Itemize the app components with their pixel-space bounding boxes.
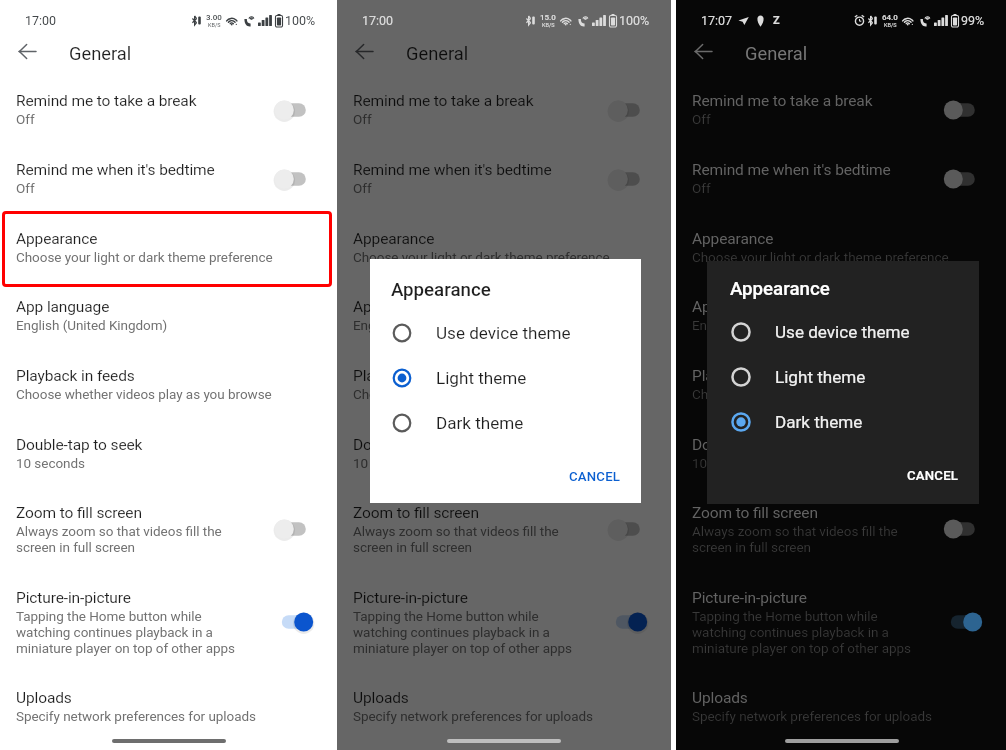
button[interactable]: Picture-in-picture — [337, 572, 671, 672]
button[interactable]: Back — [687, 35, 720, 68]
staticText: 15.0 — [540, 13, 556, 22]
button[interactable]: CANCEL — [897, 462, 969, 489]
staticText: watching continues playback in a — [353, 624, 550, 640]
button[interactable]: Appearance — [676, 213, 1006, 282]
staticText: Off — [16, 111, 35, 127]
button[interactable]: Playback in feeds — [676, 350, 1006, 419]
button[interactable]: Picture-in-picture — [676, 572, 1006, 672]
staticText: General — [745, 43, 808, 64]
button[interactable]: Zoom to fill screen — [0, 487, 337, 571]
staticText: Picture-in-picture — [692, 589, 807, 607]
button[interactable]: Turn off — [608, 609, 648, 635]
button[interactable]: Use device theme — [370, 310, 641, 355]
staticText: Playback in feeds — [692, 367, 811, 385]
staticText: Off — [353, 180, 372, 196]
button[interactable]: Playback in feeds — [0, 350, 337, 419]
staticText: Picture-in-picture — [16, 589, 131, 607]
staticText: CANCEL — [907, 468, 959, 483]
button[interactable]: Zoom to fill screen — [337, 487, 671, 571]
staticText: Uploads — [353, 689, 409, 707]
staticText: Double-tap to seek — [353, 436, 480, 454]
button[interactable]: App language — [676, 281, 1006, 350]
staticText: Appearance — [16, 230, 98, 248]
staticText: Always zoom so that videos fill the — [353, 523, 559, 539]
staticText: General — [69, 43, 132, 64]
staticText: 100% — [619, 13, 650, 28]
staticText: Remind me when it's bedtime — [692, 161, 891, 179]
staticText: Tapping the Home button while — [16, 608, 202, 624]
button[interactable]: Light theme — [370, 355, 641, 400]
button[interactable]: Dark theme — [707, 399, 979, 444]
staticText: miniature player on top of other apps — [353, 640, 572, 656]
staticText: Double-tap to seek — [16, 436, 143, 454]
staticText: Tapping the Home button while — [692, 608, 878, 624]
staticText: screen in full screen — [692, 539, 811, 555]
staticText: KB/S — [884, 22, 897, 28]
staticText: 10 seconds — [16, 455, 85, 471]
button[interactable]: Turn on — [608, 97, 648, 123]
staticText: Zoom to fill screen — [16, 504, 142, 522]
button[interactable]: Turn on — [943, 97, 983, 123]
staticText: 10 seconds — [692, 455, 761, 471]
button[interactable]: Uploads — [676, 672, 1006, 741]
button[interactable]: Turn on — [943, 166, 983, 192]
staticText: 17:07 — [701, 13, 733, 28]
staticText: screen in full screen — [16, 539, 135, 555]
button[interactable]: CANCEL — [559, 463, 631, 490]
staticText: English (United Kingdom) — [692, 317, 844, 333]
staticText: 17:00 — [25, 13, 57, 28]
staticText: Appearance — [391, 279, 491, 301]
staticText: Appearance — [730, 278, 830, 300]
staticText: Double-tap to seek — [692, 436, 819, 454]
staticText: App language — [692, 298, 786, 316]
staticText: Specify network preferences for uploads — [353, 708, 593, 724]
button[interactable]: Uploads — [0, 672, 337, 741]
staticText: Remind me when it's bedtime — [353, 161, 552, 179]
button[interactable]: Picture-in-picture — [0, 572, 337, 672]
button[interactable]: Double-tap to seek — [337, 419, 671, 488]
staticText: miniature player on top of other apps — [16, 640, 235, 656]
button[interactable]: Remind me to take a break — [0, 75, 337, 144]
button[interactable]: Turn on — [274, 516, 314, 542]
button[interactable]: Playback in feeds — [337, 350, 671, 419]
button[interactable]: Use device theme — [707, 309, 979, 354]
button[interactable]: Double-tap to seek — [676, 419, 1006, 488]
button[interactable]: Back — [11, 35, 44, 68]
staticText: Zoom to fill screen — [692, 504, 818, 522]
button[interactable]: Appearance — [0, 213, 337, 282]
button[interactable]: Turn on — [608, 516, 648, 542]
button[interactable]: Back — [348, 35, 381, 68]
staticText: Off — [16, 180, 35, 196]
button[interactable]: Turn on — [274, 97, 314, 123]
button[interactable]: Uploads — [337, 672, 671, 741]
button[interactable]: Appearance — [337, 213, 671, 282]
staticText: 99% — [961, 13, 985, 28]
button[interactable]: App language — [0, 281, 337, 350]
button[interactable]: Remind me to take a break — [337, 75, 671, 144]
staticText: Remind me when it's bedtime — [16, 161, 215, 179]
staticText: Remind me to take a break — [353, 92, 534, 110]
staticText: 10 seconds — [353, 455, 422, 471]
staticText: Z — [773, 14, 780, 27]
button[interactable]: Turn on — [274, 166, 314, 192]
staticText: Specify network preferences for uploads — [16, 708, 256, 724]
staticText: App language — [353, 298, 447, 316]
staticText: Choose whether videos play as you browse — [692, 386, 948, 402]
button[interactable]: Double-tap to seek — [0, 419, 337, 488]
button[interactable]: Remind me when it's bedtime — [337, 144, 671, 213]
staticText: Dark theme — [436, 413, 524, 433]
button[interactable]: Light theme — [707, 354, 979, 399]
staticText: Tapping the Home button while — [353, 608, 539, 624]
button[interactable]: Turn on — [943, 516, 983, 542]
button[interactable]: Remind me to take a break — [676, 75, 1006, 144]
button[interactable]: Turn off — [274, 609, 314, 635]
button[interactable]: App language — [337, 281, 671, 350]
staticText: Remind me to take a break — [16, 92, 197, 110]
button[interactable]: Remind me when it's bedtime — [676, 144, 1006, 213]
button[interactable]: Turn on — [608, 166, 648, 192]
button[interactable]: Dark theme — [370, 400, 641, 445]
button[interactable]: Remind me when it's bedtime — [0, 144, 337, 213]
staticText: Use device theme — [775, 322, 910, 342]
button[interactable]: Zoom to fill screen — [676, 487, 1006, 571]
button[interactable]: Turn off — [943, 609, 983, 635]
